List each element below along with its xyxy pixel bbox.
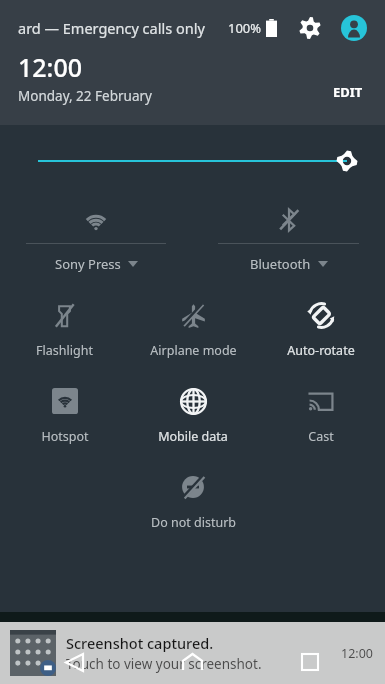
button[interactable]: Back [52, 640, 96, 684]
staticText: Monday, 22 February [18, 87, 152, 105]
staticText: 12:00 [341, 645, 373, 662]
staticText: Hotspot [41, 428, 89, 445]
button[interactable]: Brightness [0, 141, 385, 181]
button[interactable]: EDIT [327, 77, 369, 107]
staticText: Auto-rotate [287, 342, 355, 359]
staticText: EDIT [333, 83, 363, 101]
button[interactable]: Bluetooth [192, 203, 385, 273]
staticText: 100% [228, 19, 262, 37]
staticText: Airplane mode [150, 342, 237, 359]
staticText: Mobile data [158, 428, 228, 445]
staticText: Sony Press [55, 255, 121, 273]
button[interactable]: Hotspot [0, 383, 129, 447]
button[interactable]: Screenshot captured. [0, 622, 385, 684]
staticText: Bluetooth [250, 255, 311, 273]
staticText: Cast [308, 428, 334, 445]
button[interactable]: Auto-rotate [257, 297, 385, 361]
staticText: ard — Emergency calls only [18, 18, 205, 38]
button[interactable]: Sony Press [0, 203, 192, 273]
button[interactable]: Do not disturb [129, 469, 257, 533]
staticText: Screenshot captured. [66, 633, 214, 653]
button[interactable]: Cast [257, 383, 385, 447]
staticText: Touch to view your screenshot. [66, 655, 262, 673]
button[interactable]: Flashlight [0, 297, 129, 361]
button[interactable]: Recent apps [288, 640, 332, 684]
staticText: Flashlight [36, 342, 93, 359]
button[interactable]: Home [170, 640, 214, 684]
staticText: Do not disturb [151, 514, 236, 531]
button[interactable]: Airplane mode [129, 297, 257, 361]
button[interactable]: User [337, 11, 371, 45]
button[interactable]: Mobile data [129, 383, 257, 447]
button[interactable]: Settings [293, 11, 327, 45]
staticText: 12:00 [18, 50, 83, 84]
